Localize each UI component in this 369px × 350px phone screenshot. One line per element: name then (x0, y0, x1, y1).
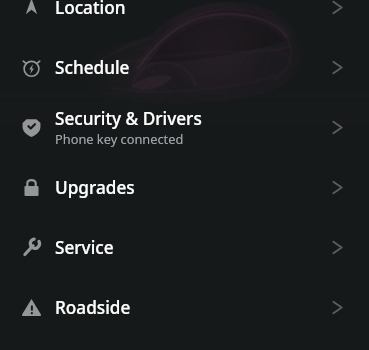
staticText: Location (55, 0, 126, 19)
staticText: Security & Drivers (55, 107, 202, 130)
button[interactable]: Location (0, 0, 369, 37)
button[interactable]: Service (0, 217, 369, 277)
staticText: Upgrades (55, 176, 135, 199)
staticText: Roadside (55, 296, 131, 319)
button[interactable]: Upgrades (0, 157, 369, 217)
button[interactable]: Schedule (0, 37, 369, 97)
staticText: Service (55, 236, 114, 259)
button[interactable]: Roadside (0, 277, 369, 337)
staticText: Phone key connected (55, 130, 184, 147)
staticText: Schedule (55, 56, 130, 79)
button[interactable]: Security & Drivers (0, 97, 369, 157)
